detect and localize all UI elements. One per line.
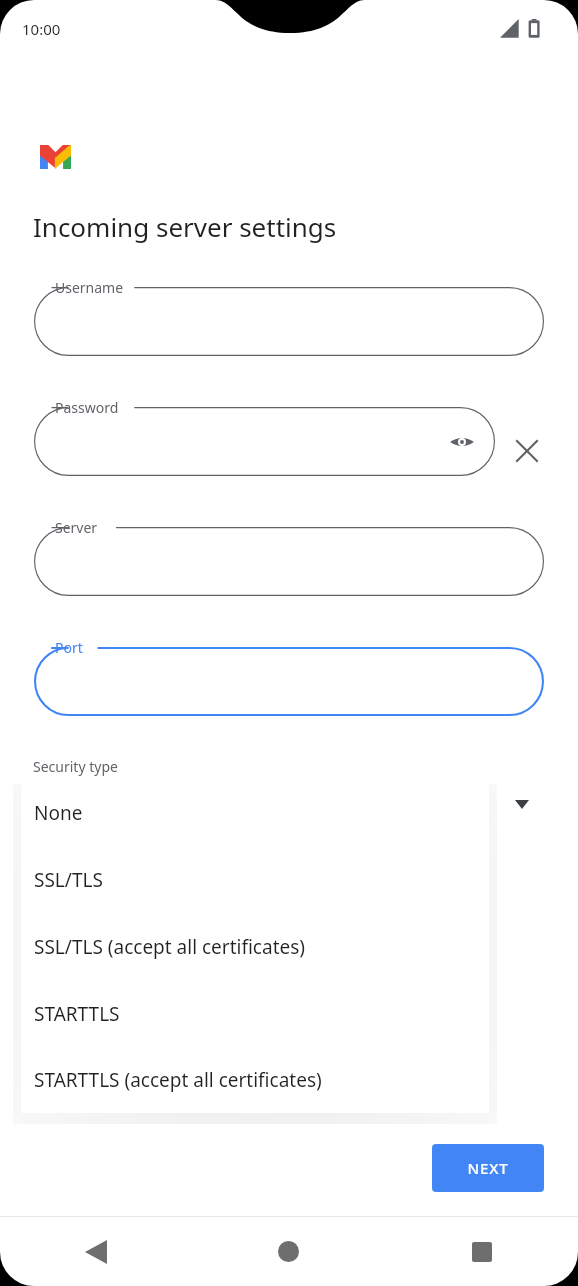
- button[interactable]: Password: [34, 407, 495, 476]
- button[interactable]: Server: [34, 527, 544, 596]
- button[interactable]: NEXT: [432, 1144, 544, 1192]
- staticText: Security type: [33, 757, 118, 776]
- button[interactable]: Show password: [440, 420, 484, 464]
- staticText: NEXT: [467, 1158, 509, 1178]
- button[interactable]: Clear password: [506, 430, 548, 472]
- button[interactable]: Username: [34, 287, 544, 356]
- staticText: None: [34, 800, 83, 826]
- staticText: 10:00: [22, 19, 61, 39]
- staticText: SSL/TLS (accept all certificates): [34, 934, 306, 960]
- staticText: Password: [55, 398, 119, 417]
- staticText: Username: [55, 278, 124, 297]
- staticText: STARTTLS (accept all certificates): [34, 1067, 322, 1093]
- button[interactable]: Home: [192, 1217, 385, 1286]
- button[interactable]: Port: [34, 647, 544, 716]
- button[interactable]: Back: [0, 1217, 192, 1286]
- button[interactable]: STARTTLS: [21, 980, 489, 1047]
- button[interactable]: SSL/TLS (accept all certificates): [21, 913, 489, 980]
- staticText: STARTTLS: [34, 1001, 120, 1027]
- staticText: SSL/TLS: [34, 867, 103, 893]
- staticText: Port: [55, 638, 83, 657]
- staticText: Incoming server settings: [33, 209, 337, 244]
- button[interactable]: Recent apps: [385, 1217, 578, 1286]
- staticText: Server: [55, 518, 98, 537]
- button[interactable]: Open security type list: [500, 782, 544, 826]
- button[interactable]: SSL/TLS: [21, 846, 489, 913]
- button[interactable]: None: [21, 779, 489, 846]
- button[interactable]: STARTTLS (accept all certificates): [21, 1047, 489, 1113]
